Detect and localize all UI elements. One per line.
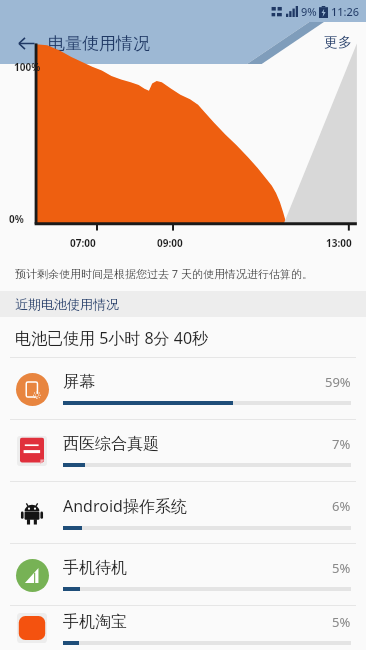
staticText: 手机待机 (63, 558, 332, 578)
button[interactable]: Back (8, 25, 44, 61)
button[interactable]: 更多 (320, 30, 356, 56)
staticText: 更多 (324, 34, 352, 52)
staticText: 100% (14, 60, 41, 74)
button[interactable]: 手机淘宝 (0, 606, 366, 650)
staticText: 09:00 (157, 236, 183, 250)
button[interactable]: 西医综合真题 (0, 420, 366, 481)
staticText: 西医综合真题 (63, 434, 332, 454)
staticText: 手机淘宝 (63, 612, 332, 632)
staticText: 59% (325, 373, 351, 391)
staticText: 屏幕 (63, 372, 325, 392)
staticText: 预计剩余使用时间是根据您过去 7 天的使用情况进行估算的。 (15, 266, 314, 281)
staticText: 电池已使用 5小时 8分 40秒 (15, 327, 209, 349)
staticText: 7% (332, 435, 351, 453)
staticText: 电量使用情况 (48, 33, 150, 54)
staticText: 9% (301, 4, 317, 19)
button[interactable]: Android操作系统 (0, 482, 366, 543)
staticText: 13:00 (326, 236, 352, 250)
button[interactable]: 手机待机 (0, 544, 366, 605)
staticText: Android操作系统 (63, 495, 332, 517)
staticText: 5% (332, 559, 351, 577)
staticText: 11:26 (331, 4, 360, 19)
staticText: 0% (9, 212, 24, 226)
button[interactable]: 屏幕 (0, 358, 366, 419)
staticText: 6% (332, 497, 351, 515)
staticText: 5% (332, 613, 351, 631)
staticText: 近期电池使用情况 (15, 296, 119, 312)
staticText: 07:00 (70, 236, 96, 250)
